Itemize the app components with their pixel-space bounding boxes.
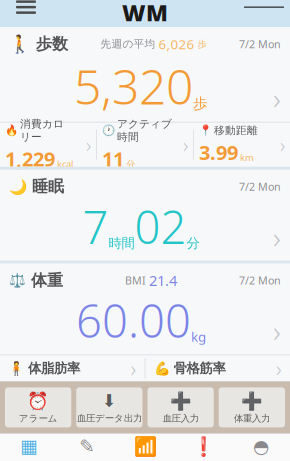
- staticText: 歩数: [31, 34, 68, 54]
- staticText: ›: [276, 354, 282, 382]
- staticText: kcal: [57, 158, 73, 170]
- staticText: 3.99: [199, 139, 238, 165]
- staticText: WM: [122, 0, 168, 28]
- button[interactable]: ⏰: [5, 387, 71, 427]
- staticText: 血圧データ出力: [77, 412, 142, 424]
- staticText: 📍: [199, 124, 212, 136]
- staticText: 先週の平均: [100, 37, 158, 51]
- staticText: ⏰: [27, 391, 49, 410]
- button[interactable]: 💪: [145, 354, 290, 382]
- button[interactable]: ⚖️: [0, 263, 290, 354]
- staticText: 🧍: [8, 361, 25, 376]
- staticText: 💪: [153, 361, 170, 376]
- staticText: 📶: [133, 436, 156, 457]
- staticText: 🔥: [5, 124, 18, 136]
- button[interactable]: ➕: [219, 387, 285, 427]
- staticText: 分: [126, 159, 135, 170]
- staticText: 7: [82, 196, 108, 256]
- button[interactable]: 🚶: [0, 27, 290, 122]
- staticText: 消費カロリー: [20, 117, 64, 143]
- staticText: 歩: [194, 38, 206, 50]
- staticText: ⬇: [102, 391, 117, 410]
- button[interactable]: 🔥: [0, 117, 96, 172]
- staticText: 骨格筋率: [173, 360, 225, 377]
- staticText: 7/2 Mon: [239, 273, 281, 287]
- staticText: ❗: [191, 436, 214, 457]
- staticText: アラーム: [19, 412, 58, 424]
- button[interactable]: Menu: [6, 0, 46, 26]
- staticText: 7/2 Mon: [239, 179, 281, 194]
- staticText: 時間: [108, 235, 134, 251]
- staticText: 1,229: [5, 145, 55, 172]
- staticText: 体重: [26, 270, 63, 290]
- staticText: ›: [273, 79, 281, 118]
- staticText: 60.00: [76, 290, 191, 350]
- staticText: km: [240, 151, 254, 163]
- button[interactable]: ❗: [174, 434, 232, 461]
- staticText: 21.4: [149, 271, 177, 290]
- staticText: 6,026: [158, 35, 194, 53]
- staticText: ✎: [79, 436, 95, 457]
- staticText: ▦: [20, 436, 38, 457]
- staticText: 血圧入力: [163, 412, 199, 424]
- button[interactable]: 📶: [116, 434, 174, 461]
- staticText: 睡眠: [27, 177, 64, 196]
- staticText: ›: [280, 131, 285, 158]
- staticText: 歩: [193, 95, 208, 113]
- button[interactable]: ➕: [147, 387, 214, 427]
- staticText: ›: [183, 131, 188, 158]
- staticText: ›: [130, 354, 136, 382]
- staticText: ◓: [253, 436, 269, 457]
- staticText: 5,320: [74, 54, 193, 118]
- button[interactable]: 📍: [194, 124, 290, 165]
- staticText: ⚖️: [9, 273, 26, 288]
- staticText: ➕: [170, 391, 192, 410]
- staticText: kg: [191, 328, 206, 345]
- staticText: 体重入力: [234, 412, 270, 424]
- staticText: 🌙: [9, 178, 27, 195]
- button[interactable]: ▦: [0, 434, 58, 461]
- staticText: 分: [186, 235, 199, 251]
- staticText: 体脂肪率: [28, 360, 80, 377]
- staticText: BMI: [125, 273, 149, 287]
- button[interactable]: ⬇: [76, 387, 142, 427]
- staticText: 7/2 Mon: [239, 37, 281, 51]
- button[interactable]: 🌙: [0, 170, 290, 261]
- staticText: ➕: [241, 391, 263, 410]
- staticText: ›: [86, 131, 91, 158]
- staticText: ›: [273, 218, 281, 257]
- staticText: 🕐: [102, 124, 115, 136]
- staticText: 11: [102, 145, 124, 172]
- staticText: 移動距離: [214, 124, 258, 137]
- button[interactable]: 🕐: [97, 117, 193, 172]
- button[interactable]: ✎: [58, 434, 116, 461]
- staticText: 02: [134, 196, 186, 256]
- button[interactable]: ◓: [232, 434, 290, 461]
- staticText: ›: [273, 311, 281, 350]
- staticText: アクティブ時間: [117, 117, 172, 143]
- staticText: 🚶: [9, 34, 31, 54]
- button[interactable]: 🧍: [0, 354, 144, 382]
